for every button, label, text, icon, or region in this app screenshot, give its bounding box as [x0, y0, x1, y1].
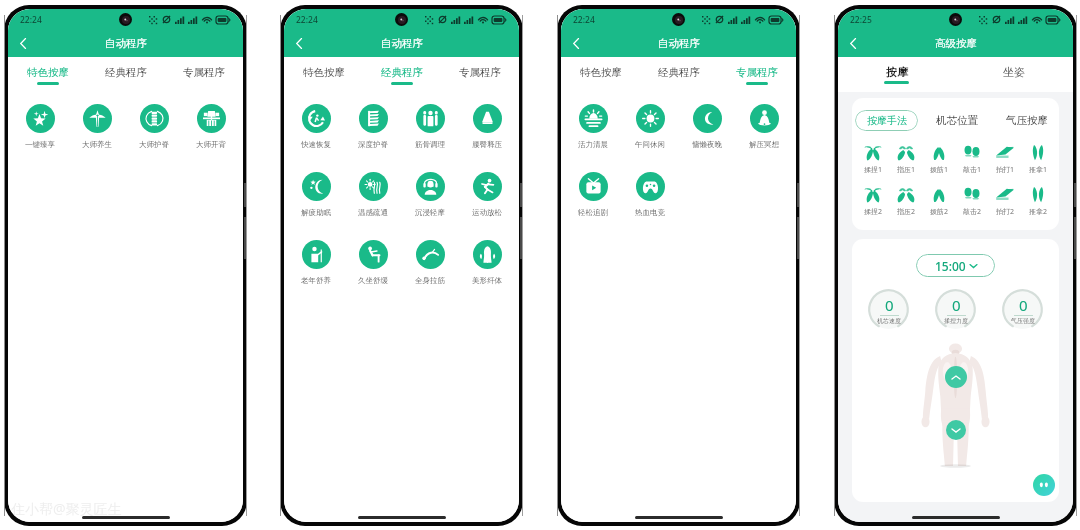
- button[interactable]: 慵懒夜晚: [680, 104, 734, 149]
- button[interactable]: Back: [565, 33, 586, 54]
- button[interactable]: 经典程序: [363, 57, 441, 90]
- staticText: 运动放松: [472, 208, 502, 217]
- staticText: 经典程序: [658, 66, 700, 79]
- staticText: 一键臻享: [25, 140, 55, 149]
- button[interactable]: 解疲助眠: [289, 172, 343, 217]
- button[interactable]: 0: [1002, 289, 1043, 330]
- button[interactable]: 推拿1: [1023, 144, 1053, 175]
- staticText: 揉捏1: [864, 165, 883, 175]
- button[interactable]: 推拿2: [1023, 186, 1053, 217]
- button[interactable]: 坐姿: [955, 57, 1073, 92]
- button[interactable]: 特色按摩: [561, 57, 640, 90]
- button[interactable]: 活力清晨: [566, 104, 620, 149]
- staticText: 15:00: [935, 258, 966, 274]
- button[interactable]: 温感疏通: [346, 172, 400, 217]
- staticText: 22:24: [296, 14, 318, 26]
- button[interactable]: 热血电竞: [623, 172, 677, 217]
- button[interactable]: 拍打1: [990, 144, 1020, 175]
- button[interactable]: Move down: [946, 420, 966, 440]
- button[interactable]: 沉浸轻摩: [403, 172, 457, 217]
- staticText: 慵懒夜晚: [692, 140, 722, 149]
- button[interactable]: 机芯位置: [918, 110, 995, 131]
- button[interactable]: Move up: [945, 366, 967, 388]
- staticText: 机芯位置: [936, 114, 978, 127]
- button[interactable]: 老年舒养: [289, 240, 343, 285]
- button[interactable]: 经典程序: [640, 57, 718, 90]
- button[interactable]: 0: [868, 289, 909, 330]
- button[interactable]: Back: [12, 33, 33, 54]
- staticText: 自动程序: [658, 37, 700, 50]
- button[interactable]: 拍打2: [990, 186, 1020, 217]
- button[interactable]: 轻松追剧: [566, 172, 620, 217]
- button[interactable]: 敲击2: [957, 186, 987, 217]
- button[interactable]: 按摩手法: [855, 110, 918, 131]
- button[interactable]: 解压冥想: [737, 104, 791, 149]
- button[interactable]: 一键臻享: [13, 104, 67, 149]
- staticText: 气压按摩: [1006, 114, 1048, 127]
- staticText: 特色按摩: [303, 66, 345, 79]
- staticText: 机芯速度: [877, 317, 901, 325]
- button[interactable]: 特色按摩: [8, 57, 87, 90]
- button[interactable]: 气压按摩: [995, 110, 1059, 131]
- staticText: 22:24: [20, 14, 42, 26]
- button[interactable]: 指压1: [891, 144, 921, 175]
- staticText: 0: [885, 295, 894, 315]
- button[interactable]: 专属程序: [441, 57, 519, 90]
- button[interactable]: 大师护脊: [127, 104, 181, 149]
- staticText: 拍打1: [996, 165, 1015, 175]
- button[interactable]: 大师养生: [70, 104, 124, 149]
- button[interactable]: 午间休闲: [623, 104, 677, 149]
- button[interactable]: 经典程序: [87, 57, 165, 90]
- button[interactable]: 揉捏1: [858, 144, 888, 175]
- button[interactable]: Back: [842, 33, 863, 54]
- button[interactable]: 15:00: [916, 254, 995, 277]
- staticText: 久坐舒缓: [358, 276, 388, 285]
- button[interactable]: 揉捏2: [858, 186, 888, 217]
- button[interactable]: 快速恢复: [289, 104, 343, 149]
- staticText: 按摩手法: [867, 114, 907, 127]
- staticText: 揉捏力度: [944, 317, 968, 325]
- staticText: 大师护脊: [139, 140, 169, 149]
- staticText: 0: [952, 295, 961, 315]
- button[interactable]: Back: [288, 33, 309, 54]
- staticText: 0: [1019, 295, 1028, 315]
- button[interactable]: 深度护脊: [346, 104, 400, 149]
- staticText: 温感疏通: [358, 208, 388, 217]
- button[interactable]: 按摩: [838, 57, 955, 92]
- staticText: 全身拉筋: [415, 276, 445, 285]
- button[interactable]: 指压2: [891, 186, 921, 217]
- staticText: 热血电竞: [635, 208, 665, 217]
- button[interactable]: Assistant: [1033, 474, 1055, 496]
- button[interactable]: 筋骨调理: [403, 104, 457, 149]
- staticText: 22:25: [850, 14, 872, 26]
- button[interactable]: 运动放松: [460, 172, 514, 217]
- staticText: 美形纤体: [472, 276, 502, 285]
- staticText: 深度护脊: [358, 140, 388, 149]
- button[interactable]: 特色按摩: [284, 57, 363, 90]
- staticText: 指压1: [897, 165, 916, 175]
- button[interactable]: 久坐舒缓: [346, 240, 400, 285]
- button[interactable]: 腰臀释压: [460, 104, 514, 149]
- staticText: 快速恢复: [301, 140, 331, 149]
- staticText: 指压2: [897, 207, 916, 217]
- button[interactable]: 大师开背: [184, 104, 238, 149]
- staticText: 敲击2: [963, 207, 982, 217]
- button[interactable]: 专属程序: [718, 57, 796, 90]
- staticText: 高级按摩: [935, 37, 977, 50]
- button[interactable]: 拨筋1: [924, 144, 954, 175]
- button[interactable]: 敲击1: [957, 144, 987, 175]
- staticText: 按摩: [886, 65, 908, 79]
- button[interactable]: 专属程序: [165, 57, 243, 90]
- staticText: 午间休闲: [635, 140, 665, 149]
- staticText: 特色按摩: [27, 66, 69, 79]
- staticText: 腰臀释压: [472, 140, 502, 149]
- staticText: 敲击1: [963, 165, 982, 175]
- staticText: 筋骨调理: [415, 140, 445, 149]
- button[interactable]: 拨筋2: [924, 186, 954, 217]
- button[interactable]: 全身拉筋: [403, 240, 457, 285]
- button[interactable]: 0: [935, 289, 976, 330]
- button[interactable]: 美形纤体: [460, 240, 514, 285]
- staticText: 经典程序: [105, 66, 147, 79]
- staticText: 轻松追剧: [578, 208, 608, 217]
- staticText: 坐姿: [1003, 65, 1025, 79]
